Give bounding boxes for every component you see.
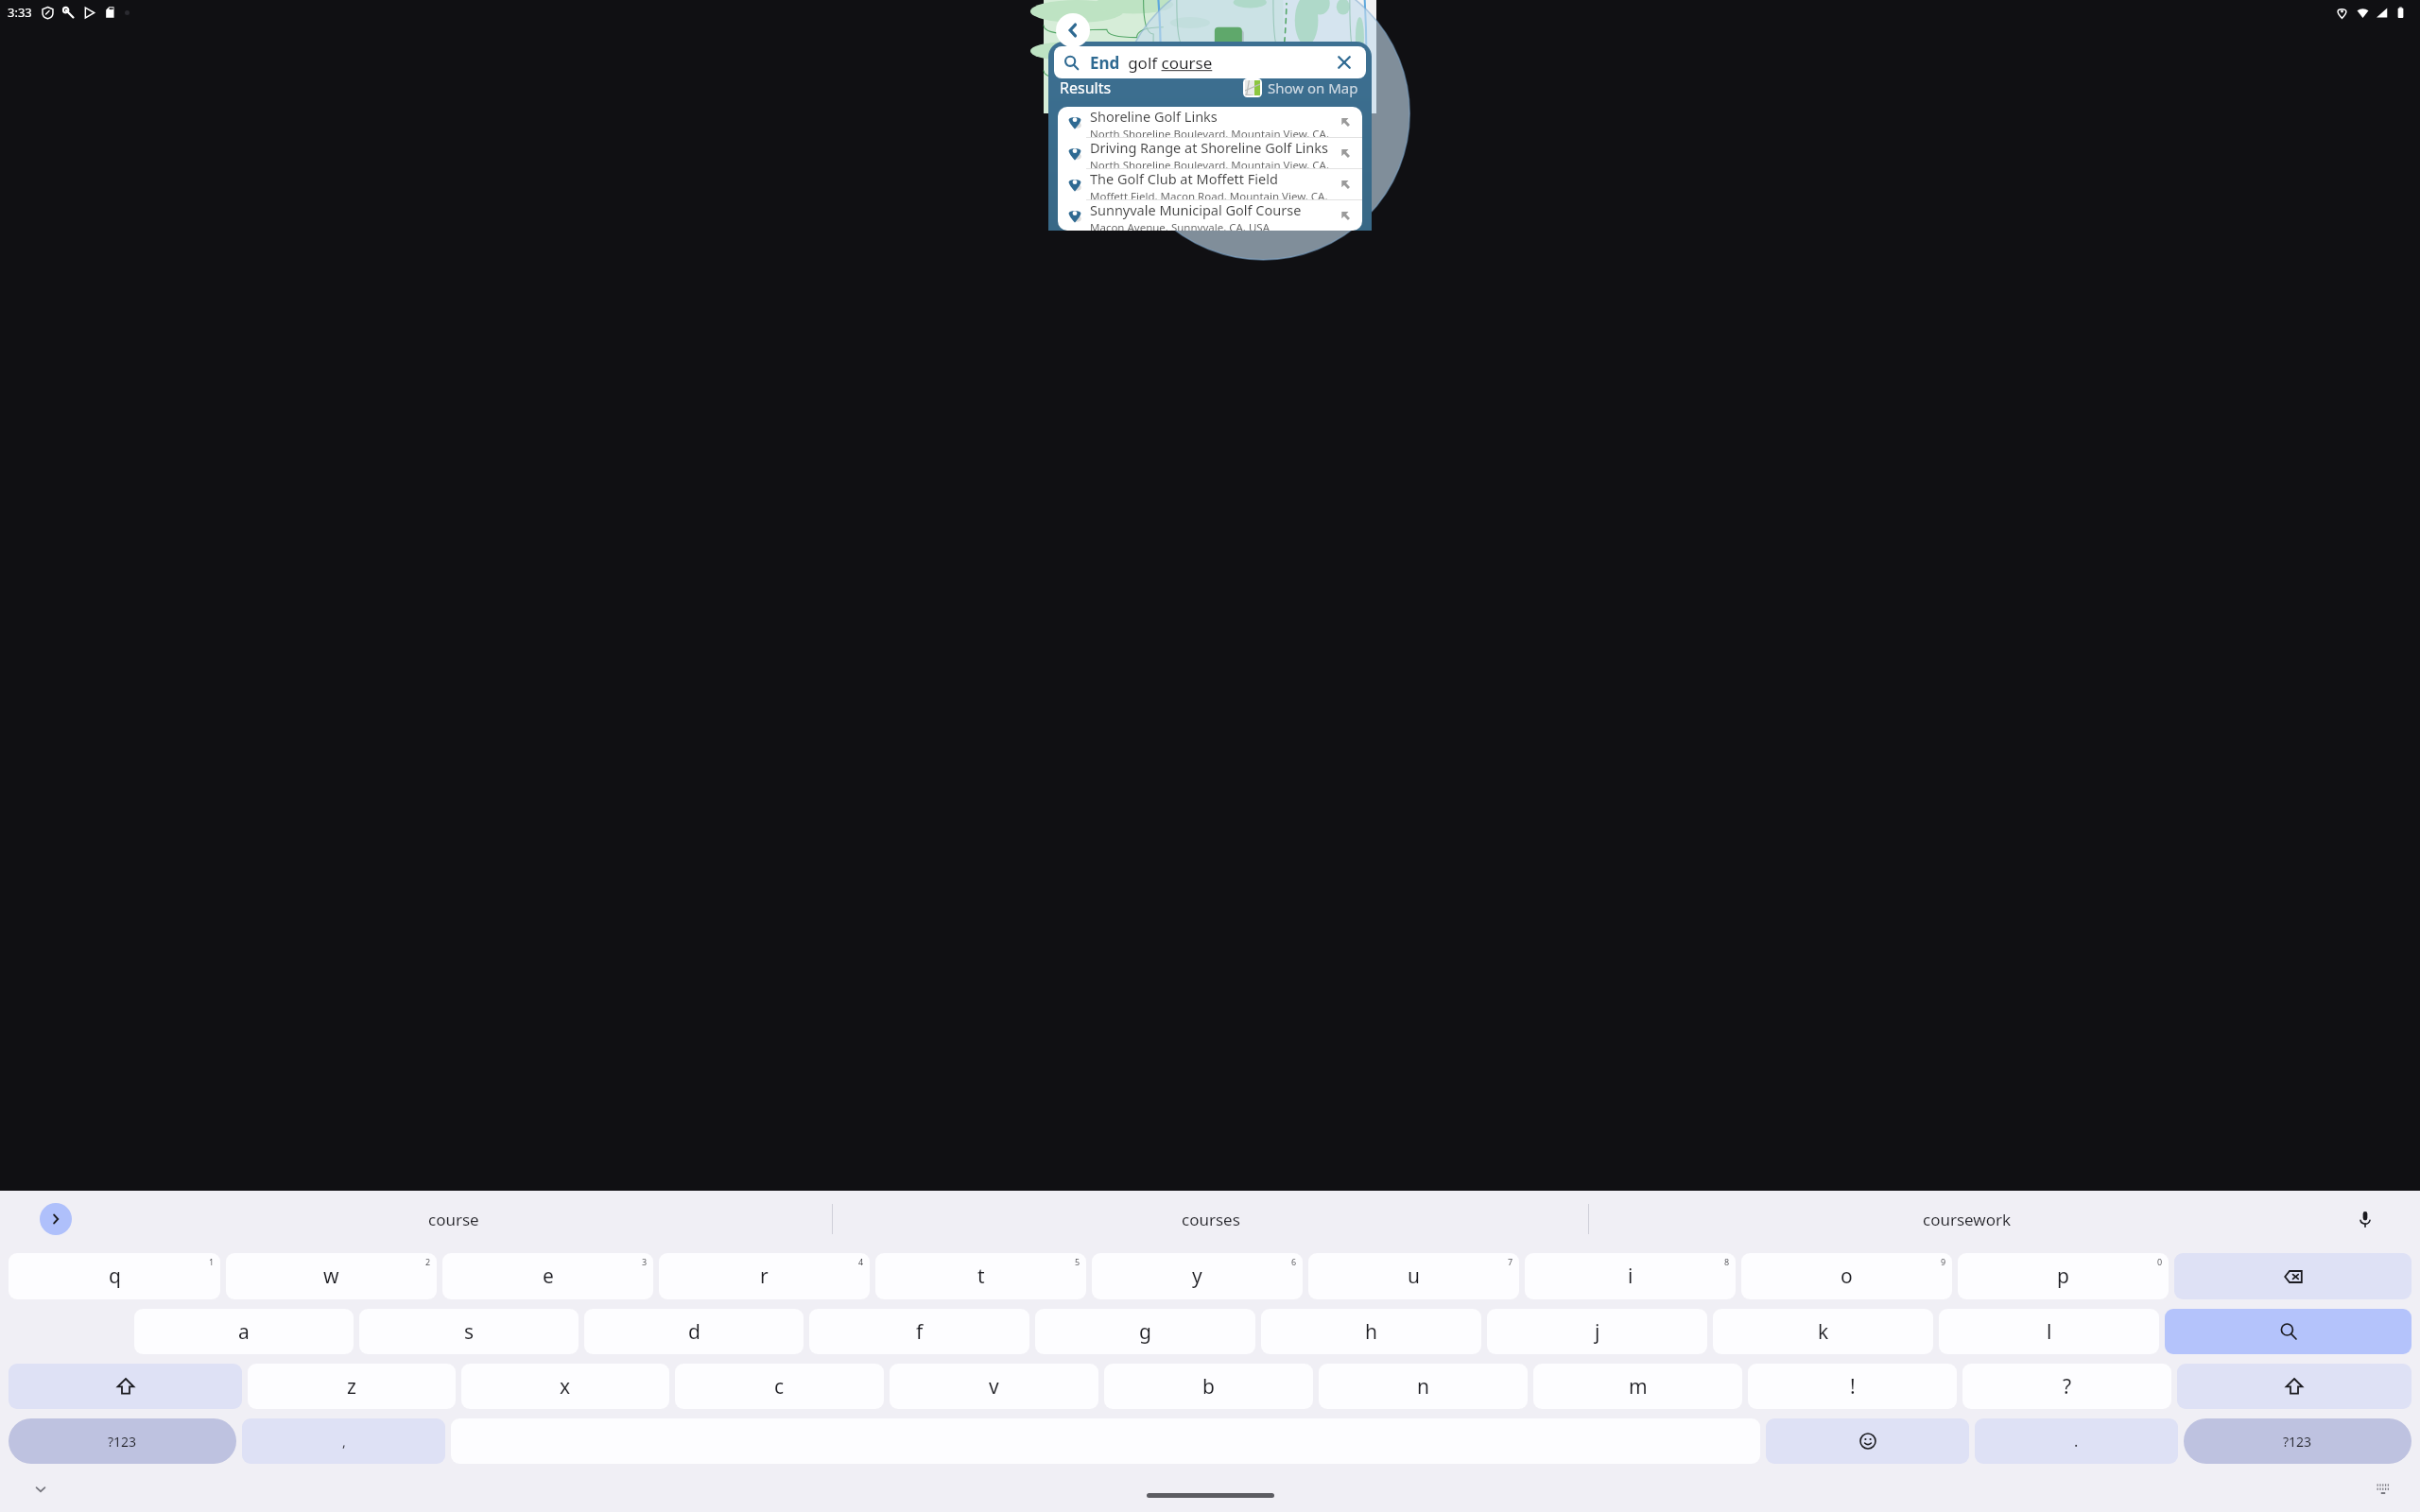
button[interactable]: g — [1035, 1309, 1255, 1354]
button[interactable]: Shift — [2177, 1364, 2411, 1409]
staticText: ! — [1850, 1373, 1856, 1400]
button[interactable]: p — [1958, 1253, 2169, 1299]
button[interactable]: h — [1261, 1309, 1481, 1354]
button[interactable]: , — [242, 1418, 445, 1464]
staticText: k — [1818, 1318, 1829, 1346]
staticText: 3:33 — [8, 4, 32, 21]
staticText: w — [323, 1263, 339, 1290]
button[interactable]: Emoji — [1766, 1418, 1969, 1464]
staticText: Macon Avenue, Sunnyvale, CA, USA — [1090, 220, 1270, 231]
staticText: North Shoreline Boulevard, Mountain View… — [1090, 127, 1333, 137]
staticText: h — [1365, 1318, 1377, 1346]
button[interactable]: Driving Range at Shoreline Golf Links — [1058, 138, 1362, 168]
button[interactable]: coursework — [1589, 1191, 2344, 1247]
staticText: ?123 — [108, 1433, 137, 1451]
button[interactable]: More suggestions — [40, 1203, 72, 1235]
button[interactable]: v — [890, 1364, 1098, 1409]
button[interactable]: k — [1713, 1309, 1933, 1354]
button[interactable]: Backspace — [2174, 1253, 2411, 1299]
button[interactable]: e — [442, 1253, 653, 1299]
staticText: . — [2074, 1431, 2079, 1452]
button[interactable]: i — [1525, 1253, 1736, 1299]
staticText: 9 — [1941, 1256, 1946, 1267]
staticText: j — [1595, 1318, 1600, 1346]
staticText: 5 — [1075, 1256, 1080, 1267]
staticText: v — [989, 1373, 999, 1400]
staticText: ?123 — [2283, 1433, 2312, 1451]
staticText: p — [2057, 1263, 2069, 1290]
staticText: m — [1629, 1373, 1648, 1400]
button[interactable]: Show on Map — [1241, 77, 1360, 99]
staticText: 8 — [1724, 1256, 1730, 1267]
button[interactable]: Change keyboard — [2371, 1477, 2395, 1502]
staticText: u — [1408, 1263, 1420, 1290]
button[interactable]: course — [76, 1191, 832, 1247]
button[interactable]: u — [1308, 1253, 1519, 1299]
staticText: 2 — [425, 1256, 431, 1267]
staticText: 3 — [642, 1256, 648, 1267]
button[interactable]: Back — [1056, 13, 1090, 47]
staticText: e — [543, 1263, 554, 1290]
staticText: Moffett Field, Macon Road, Mountain View… — [1090, 189, 1333, 199]
button[interactable]: a — [134, 1309, 354, 1354]
staticText: f — [916, 1318, 924, 1346]
button[interactable]: w — [226, 1253, 437, 1299]
staticText: i — [1628, 1263, 1633, 1290]
button[interactable]: Search — [2165, 1309, 2411, 1354]
staticText: The Golf Club at Moffett Field — [1090, 169, 1278, 188]
staticText: x — [560, 1373, 571, 1400]
staticText: coursework — [1923, 1209, 2012, 1230]
button[interactable]: ! — [1748, 1364, 1957, 1409]
button[interactable]: f — [809, 1309, 1029, 1354]
button[interactable]: b — [1104, 1364, 1313, 1409]
button[interactable]: o — [1741, 1253, 1952, 1299]
staticText: s — [464, 1318, 475, 1346]
button[interactable]: courses — [833, 1191, 1588, 1247]
staticText: course — [428, 1209, 479, 1230]
button[interactable]: t — [875, 1253, 1086, 1299]
button[interactable]: c — [675, 1364, 884, 1409]
button[interactable]: Sunnyvale Municipal Golf Course — [1058, 200, 1362, 231]
button[interactable]: s — [359, 1309, 579, 1354]
button[interactable]: d — [584, 1309, 804, 1354]
staticText: 0 — [2157, 1256, 2163, 1267]
button[interactable]: x — [461, 1364, 669, 1409]
staticText: ? — [2063, 1373, 2072, 1400]
staticText: t — [977, 1263, 985, 1290]
button[interactable]: q — [9, 1253, 220, 1299]
button[interactable]: Hide keyboard — [26, 1475, 55, 1503]
staticText: 6 — [1291, 1256, 1297, 1267]
staticText: c — [774, 1373, 785, 1400]
staticText: Show on Map — [1268, 78, 1358, 97]
button[interactable]: Clear — [1332, 50, 1357, 75]
button[interactable]: ?123 — [9, 1418, 236, 1464]
button[interactable]: Voice input — [2348, 1202, 2382, 1236]
button[interactable]: z — [248, 1364, 456, 1409]
button[interactable]: End golf course — [1054, 46, 1366, 78]
staticText: l — [2047, 1318, 2052, 1346]
staticText: a — [238, 1318, 250, 1346]
button[interactable]: Shift — [9, 1364, 242, 1409]
staticText: y — [1192, 1263, 1202, 1290]
staticText: q — [109, 1263, 121, 1290]
staticText: o — [1841, 1263, 1853, 1290]
button[interactable]: ?123 — [2184, 1418, 2411, 1464]
staticText: r — [760, 1263, 769, 1290]
button[interactable]: . — [1975, 1418, 2178, 1464]
button[interactable]: l — [1939, 1309, 2159, 1354]
button[interactable]: n — [1319, 1364, 1528, 1409]
staticText: 7 — [1508, 1256, 1513, 1267]
staticText: 4 — [858, 1256, 864, 1267]
staticText: courses — [1182, 1209, 1240, 1230]
button[interactable]: j — [1487, 1309, 1707, 1354]
staticText: z — [347, 1373, 356, 1400]
button[interactable]: m — [1533, 1364, 1742, 1409]
staticText: n — [1417, 1373, 1429, 1400]
button[interactable]: The Golf Club at Moffett Field — [1058, 169, 1362, 199]
button[interactable]: ? — [1962, 1364, 2171, 1409]
staticText: 1 — [209, 1256, 215, 1267]
button[interactable]: r — [659, 1253, 870, 1299]
button[interactable]: y — [1092, 1253, 1303, 1299]
button[interactable]: Shoreline Golf Links — [1058, 107, 1362, 137]
